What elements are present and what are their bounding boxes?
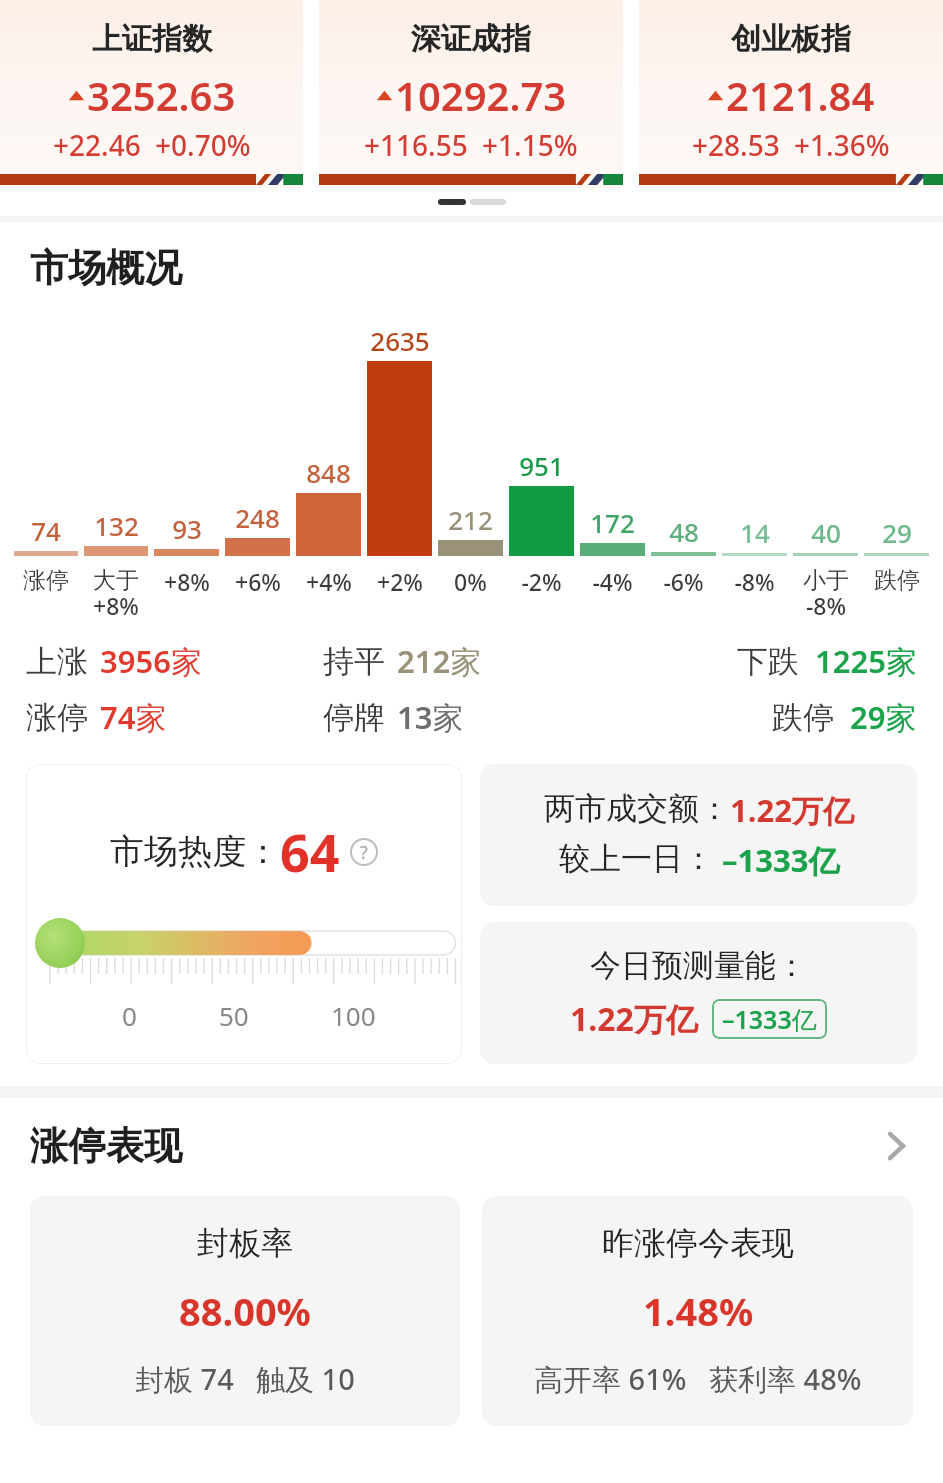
staticText: 29: [882, 515, 912, 550]
staticText: +22.46: [53, 126, 141, 164]
button[interactable]: 上证指数: [0, 0, 303, 188]
staticText: 涨停: [26, 698, 88, 737]
staticText: 封板率: [197, 1223, 293, 1263]
button[interactable]: 帮助说明: [350, 838, 378, 866]
button[interactable]: 封板率: [30, 1196, 460, 1426]
staticText: ?: [360, 840, 368, 865]
staticText: 较上一日：: [559, 839, 714, 878]
staticText: 涨停: [23, 566, 69, 595]
staticText: 获利率 48%: [709, 1359, 862, 1399]
staticText: +0.70%: [155, 126, 251, 164]
staticText: 市场热度：: [110, 830, 280, 873]
staticText: 1225家: [815, 640, 917, 682]
staticText: +1.15%: [482, 126, 578, 164]
staticText: 2121.84: [726, 68, 875, 122]
staticText: 40: [811, 515, 841, 550]
staticText: 29家: [850, 696, 917, 738]
button[interactable]: 深证成指: [319, 0, 623, 188]
staticText: 深证成指: [411, 20, 531, 58]
button[interactable]: 创业板指: [639, 0, 943, 188]
staticText: 64: [280, 816, 340, 887]
staticText: 高开率 61%: [534, 1359, 687, 1399]
staticText: 0: [122, 998, 137, 1033]
staticText: 48: [669, 514, 699, 549]
staticText: +116.55: [364, 126, 468, 164]
staticText: 上涨: [26, 642, 88, 681]
staticText: 212: [448, 502, 493, 537]
staticText: 88.00%: [179, 1285, 311, 1337]
staticText: -2%: [521, 566, 562, 597]
staticText: 触及 10: [256, 1359, 355, 1399]
staticText: 2635: [370, 323, 430, 358]
button[interactable]: 两市成交额：: [480, 764, 917, 906]
staticText: 停牌: [323, 698, 385, 737]
staticText: 248: [235, 500, 280, 535]
staticText: 市场概况: [30, 244, 182, 292]
staticText: 封板 74: [135, 1359, 234, 1399]
staticText: 13家: [397, 696, 464, 738]
staticText: 74家: [100, 696, 167, 738]
staticText: +28.53: [692, 126, 780, 164]
staticText: 74: [31, 513, 61, 548]
staticText: 3956家: [100, 640, 202, 682]
staticText: 小于 -8%: [803, 566, 849, 622]
staticText: 两市成交额：: [544, 789, 730, 828]
staticText: 创业板指: [731, 20, 851, 58]
staticText: 涨停表现: [30, 1122, 182, 1170]
other: 查看更多: [879, 1129, 913, 1163]
staticText: –1333亿: [722, 1002, 817, 1036]
button[interactable]: 涨停表现: [30, 1122, 913, 1170]
staticText: 132: [94, 508, 139, 543]
staticText: -8%: [734, 566, 775, 597]
staticText: 93: [172, 511, 202, 546]
staticText: 3252.63: [87, 68, 236, 122]
staticText: 大于 +8%: [93, 566, 139, 622]
staticText: 今日预测量能：: [590, 946, 807, 985]
staticText: -4%: [592, 566, 633, 597]
staticText: +4%: [306, 566, 352, 597]
staticText: 951: [519, 448, 564, 483]
staticText: 50: [219, 998, 249, 1033]
staticText: 跌停: [772, 698, 834, 737]
staticText: +2%: [377, 566, 423, 597]
staticText: +8%: [164, 566, 210, 597]
staticText: 0%: [454, 566, 487, 597]
staticText: 上证指数: [92, 20, 212, 58]
staticText: +6%: [235, 566, 281, 597]
staticText: 1.22万亿: [570, 997, 698, 1041]
button[interactable]: 今日预测量能：: [480, 922, 917, 1064]
staticText: 1.48%: [643, 1285, 754, 1337]
staticText: -6%: [663, 566, 704, 597]
staticText: 100: [331, 998, 376, 1033]
staticText: 14: [740, 515, 770, 550]
button[interactable]: 市场热度：: [26, 764, 462, 1064]
staticText: 持平: [323, 642, 385, 681]
staticText: 1.22万亿: [730, 789, 854, 831]
staticText: +1.36%: [794, 126, 890, 164]
staticText: 172: [590, 505, 635, 540]
button[interactable]: 昨涨停今表现: [482, 1196, 913, 1426]
staticText: –1333亿: [722, 839, 840, 881]
staticText: 212家: [397, 640, 482, 682]
staticText: 10292.73: [395, 68, 567, 122]
staticText: 昨涨停今表现: [602, 1223, 794, 1263]
staticText: 跌停: [874, 566, 920, 595]
staticText: 下跌: [737, 642, 799, 681]
staticText: 848: [306, 455, 351, 490]
